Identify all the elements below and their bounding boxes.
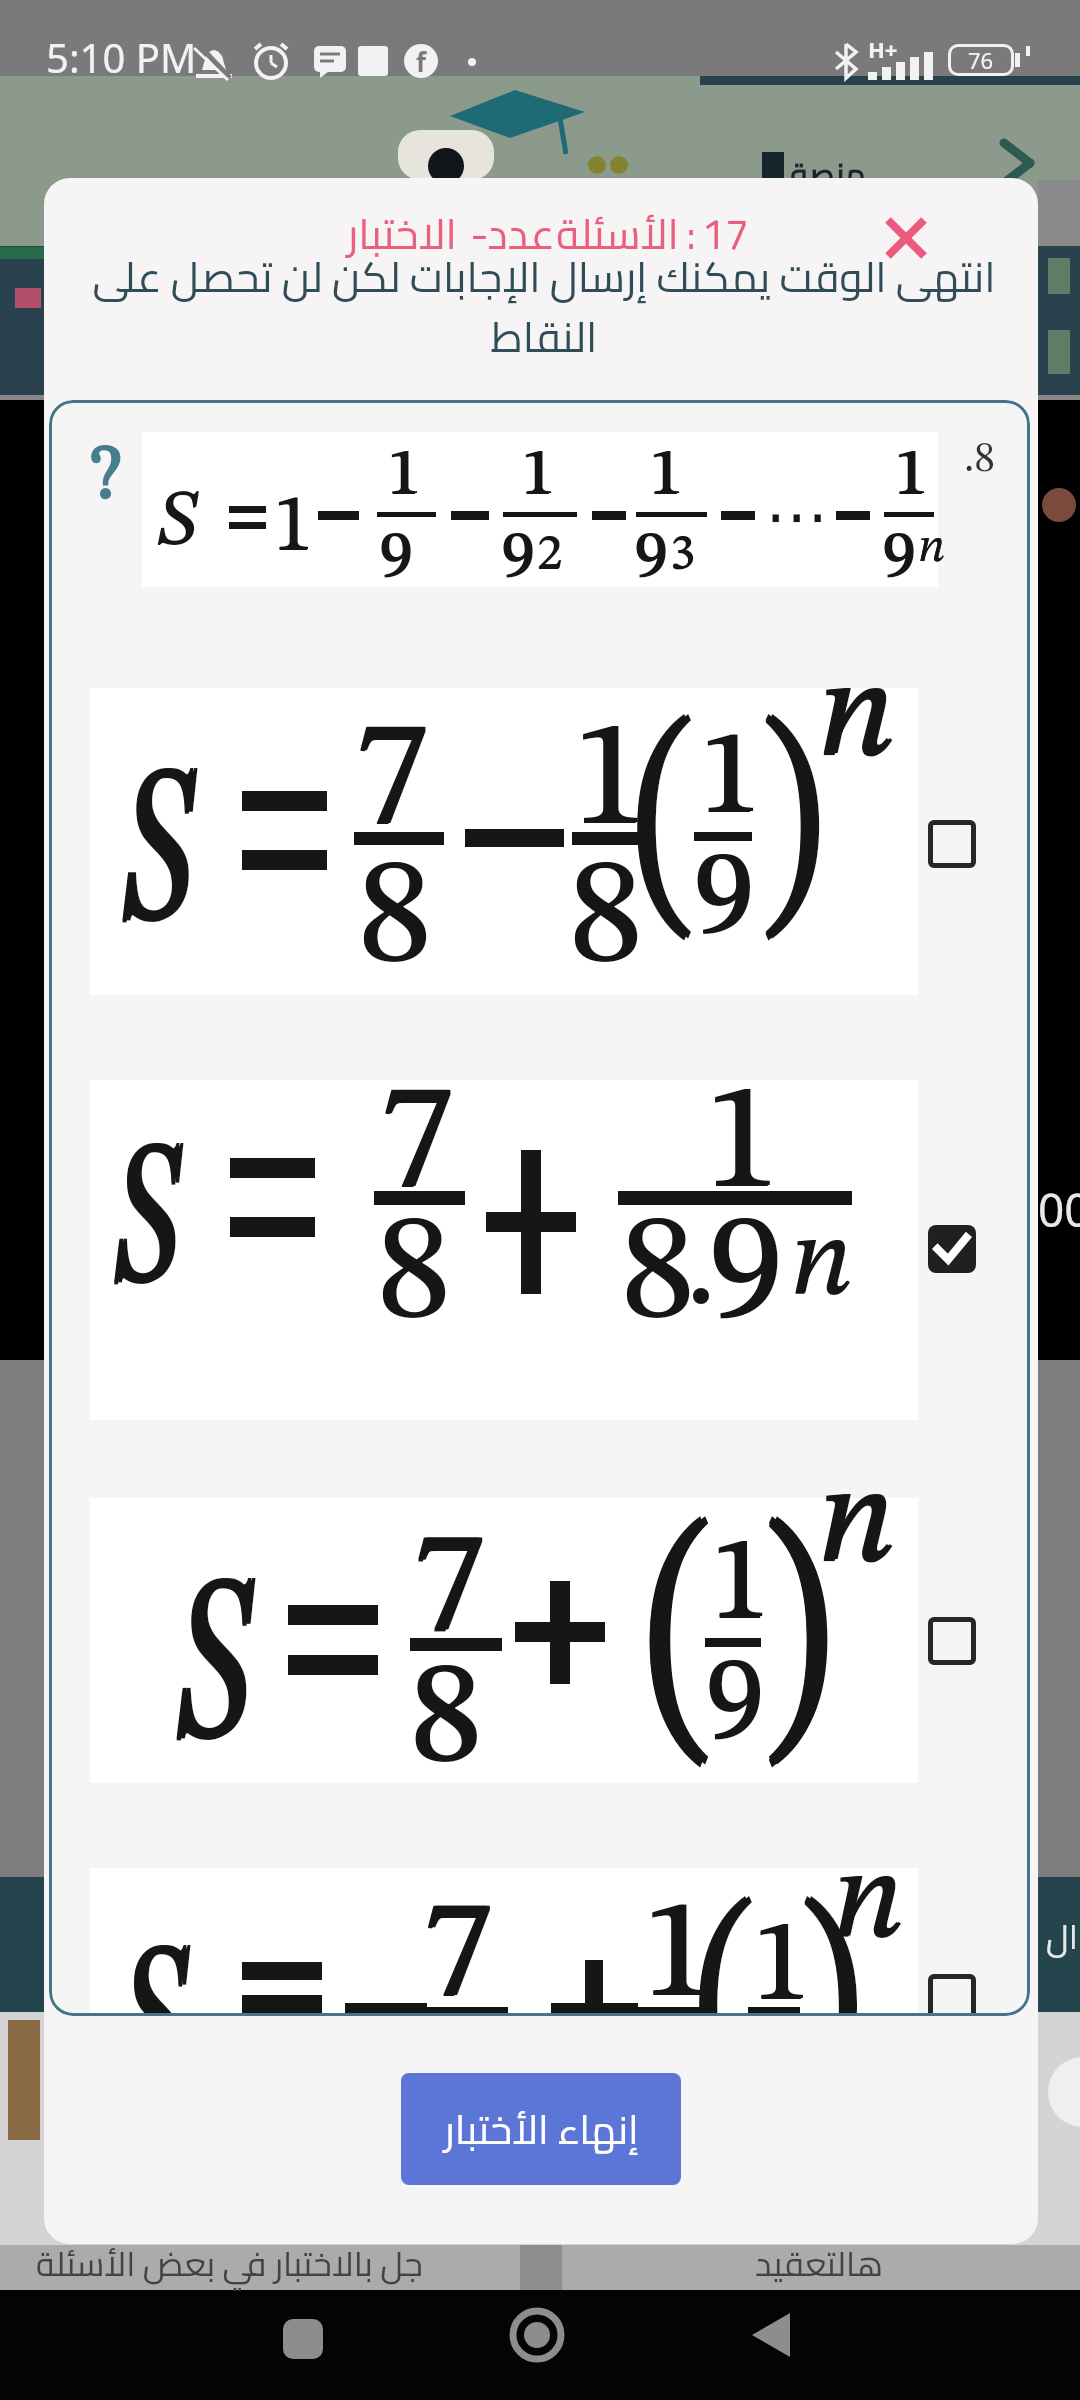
button[interactable]: إنهاء الأختبار [401, 2073, 681, 2185]
staticText: 1 [273, 488, 313, 568]
staticText: ( [644, 1507, 709, 1778]
staticText: ) [763, 1507, 828, 1778]
staticText: 5:10 PM [46, 30, 197, 84]
staticText: 9 [710, 1201, 785, 1351]
staticText: n [817, 1456, 894, 1591]
staticText: منصة [790, 144, 866, 204]
staticText: 3 [671, 530, 696, 580]
staticText: 1 [712, 1526, 771, 1644]
staticText: 2 [537, 530, 562, 580]
staticText: 1 [273, 489, 313, 569]
staticText: 7 [356, 708, 431, 858]
staticText: الأسئلة [556, 194, 679, 273]
staticText: 8 [376, 1201, 451, 1351]
staticText: ) [799, 1889, 859, 2016]
button[interactable] [508, 2306, 566, 2364]
staticText: 7 [379, 1071, 454, 1221]
staticText: 9 [379, 527, 412, 593]
staticText: ? [90, 439, 122, 515]
staticText: 9 [882, 526, 915, 592]
staticText: 1 [896, 443, 929, 509]
staticText: 1 [642, 1888, 712, 2016]
staticText: 9 [693, 842, 753, 962]
staticText: S [115, 1124, 183, 1329]
staticText: 8 [359, 845, 434, 995]
staticText: 9 [882, 527, 915, 593]
staticText: 1 [710, 1528, 769, 1646]
staticText: 9 [708, 1201, 783, 1351]
staticText: 1 [752, 1911, 809, 2016]
staticText: جل بالاختبار في بعض الأسئلة [36, 2232, 423, 2296]
staticText: 1 [699, 720, 759, 840]
button[interactable] [928, 1225, 976, 1273]
staticText: 7 [425, 1887, 495, 2016]
button[interactable] [90, 1498, 918, 1783]
button[interactable] [876, 208, 936, 268]
staticText: 1 [894, 444, 927, 510]
staticText: 1 [645, 1887, 715, 2016]
staticText: S [156, 485, 198, 563]
button[interactable] [748, 2311, 796, 2359]
staticText: 9 [636, 526, 669, 592]
staticText: 1 [699, 721, 759, 841]
staticText: ( [698, 1889, 758, 2016]
staticText: f [416, 44, 427, 78]
staticText: S [119, 747, 193, 970]
staticText: S [118, 1928, 186, 2016]
staticText: 8 [357, 845, 432, 995]
staticText: 1 [521, 444, 554, 510]
staticText: .8 [964, 439, 996, 481]
staticText: - [470, 194, 489, 273]
staticText: ( [644, 1510, 709, 1781]
staticText: 7 [422, 1888, 492, 2016]
staticText: 1 [642, 1887, 712, 2016]
staticText: 1 [894, 443, 927, 509]
staticText: 1 [389, 443, 422, 509]
button[interactable] [90, 1080, 918, 1420]
staticText: 9 [503, 526, 536, 592]
staticText: 9 [705, 1646, 764, 1764]
staticText: 1 [702, 720, 762, 840]
staticText: 9 [696, 841, 756, 961]
staticText: n [820, 650, 897, 785]
staticText: 3 [670, 531, 695, 581]
staticText: 1 [274, 488, 314, 568]
staticText: n [790, 1210, 853, 1320]
button[interactable] [928, 1974, 976, 2016]
staticText: ) [760, 708, 821, 953]
staticText: 9 [708, 1202, 783, 1352]
staticText: S [118, 1926, 186, 2016]
staticText: 7 [412, 1518, 484, 1663]
staticText: S [157, 484, 199, 562]
staticText: S [173, 1556, 251, 1791]
staticText: 1 [523, 443, 556, 509]
staticText: ⋯ [765, 480, 828, 553]
staticText: 7 [379, 1072, 454, 1222]
staticText: 7 [412, 1520, 484, 1665]
staticText: 7 [381, 1071, 456, 1221]
staticText: ) [764, 706, 825, 951]
staticText: عدد [487, 194, 555, 273]
button[interactable] [928, 820, 976, 868]
staticText: ) [763, 1510, 828, 1781]
staticText: 9 [884, 526, 917, 592]
staticText: 8 [570, 845, 645, 995]
staticText: S [177, 1556, 255, 1791]
button[interactable] [90, 1868, 918, 2016]
button[interactable] [90, 688, 918, 995]
staticText: 9 [693, 841, 753, 961]
staticText: ( [632, 708, 693, 953]
button[interactable] [283, 2319, 323, 2359]
staticText: n [817, 650, 894, 785]
staticText: n [790, 1209, 853, 1319]
staticText: ( [694, 1891, 754, 2016]
staticText: 76 [968, 45, 994, 75]
staticText: 8 [378, 1201, 453, 1351]
staticText: H+ [868, 34, 898, 64]
staticText: 8 [409, 1648, 481, 1793]
button[interactable] [928, 1617, 976, 1665]
staticText: n [918, 524, 946, 572]
staticText: 3 [670, 530, 695, 580]
staticText: 1 [572, 709, 647, 859]
staticText: 17 [701, 194, 749, 273]
